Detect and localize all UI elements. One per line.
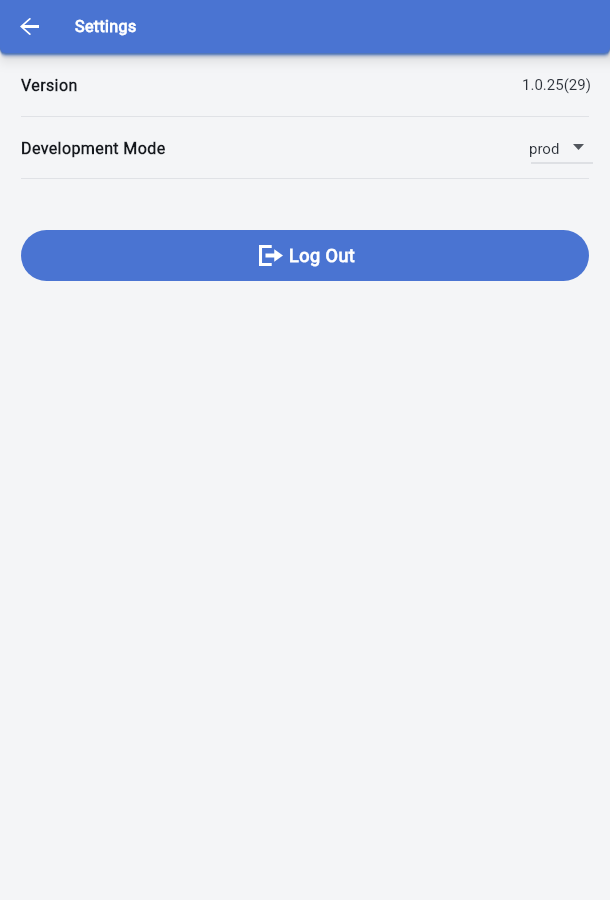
staticText: 1.0.25(29) — [522, 76, 591, 94]
button[interactable]: Version — [0, 54, 610, 116]
staticText: Settings — [75, 17, 137, 36]
staticText: prod — [529, 140, 560, 158]
staticText: Log Out — [289, 245, 356, 266]
staticText: Development Mode — [21, 139, 166, 158]
button[interactable]: Log Out — [21, 230, 589, 281]
button[interactable]: Development Mode — [0, 117, 610, 179]
button[interactable]: Back — [8, 5, 50, 47]
staticText: Version — [21, 76, 78, 95]
